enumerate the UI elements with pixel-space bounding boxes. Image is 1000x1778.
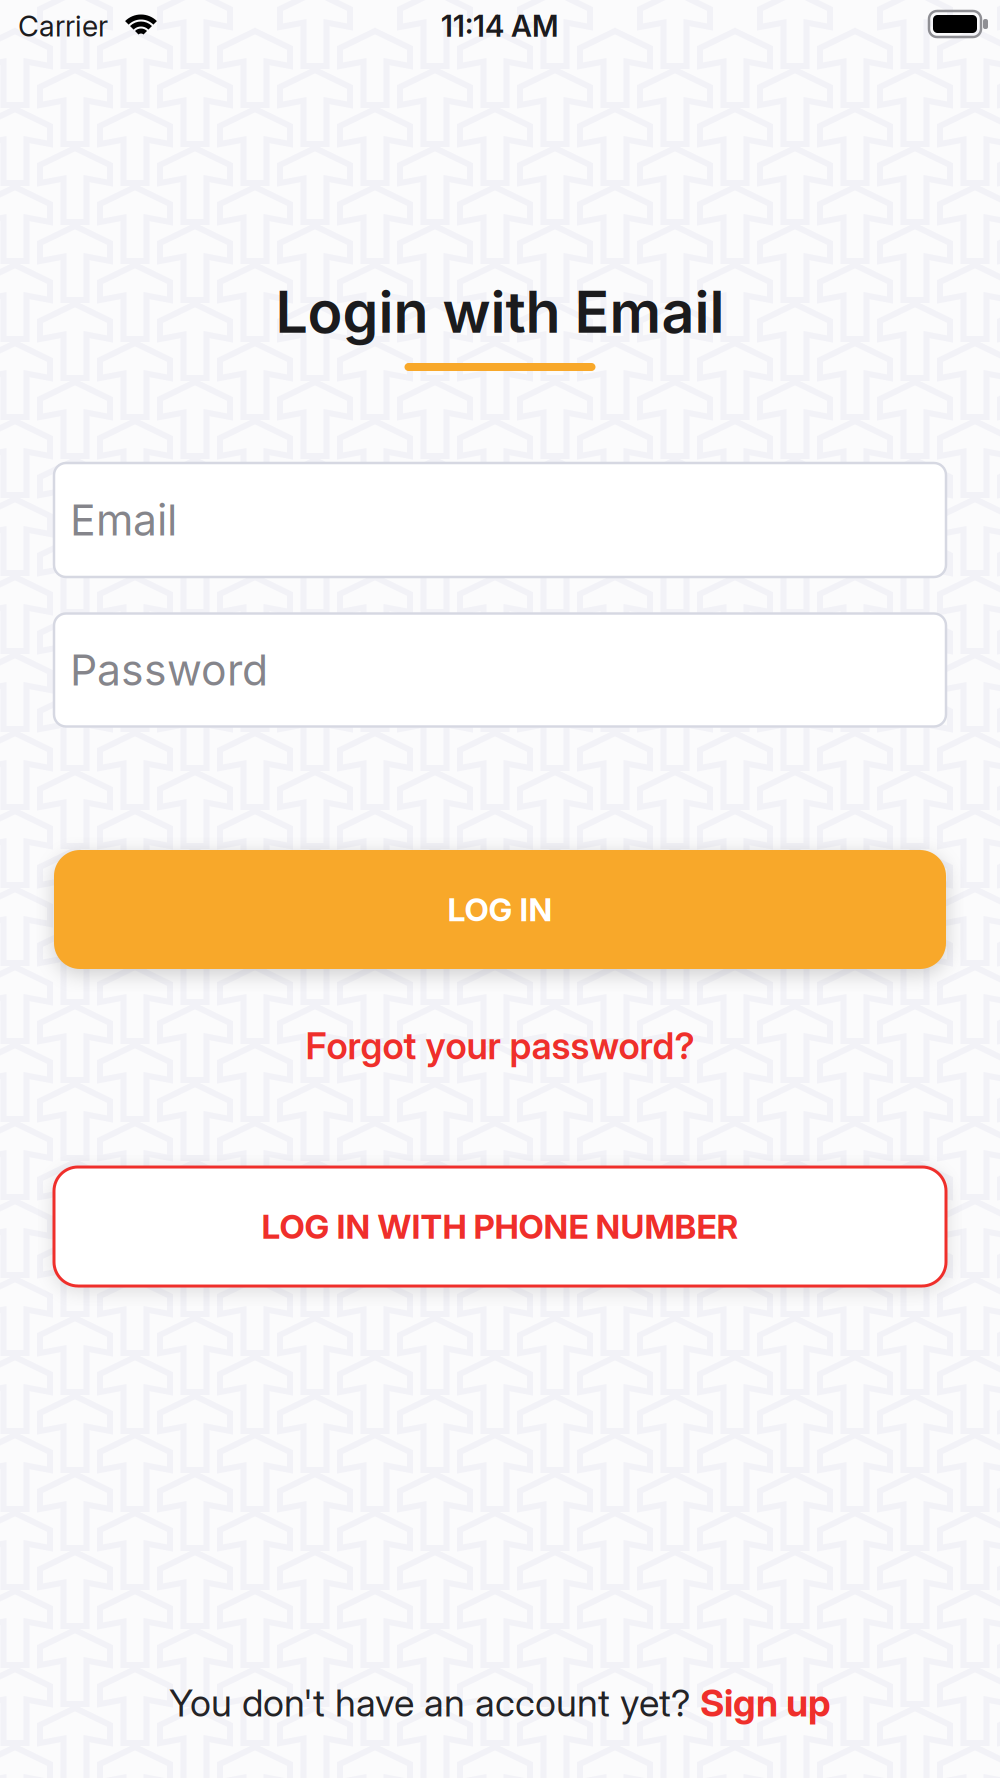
button[interactable]: Email — [54, 463, 946, 577]
staticText: Carrier — [18, 9, 108, 43]
staticText: Sign up — [700, 1680, 831, 1726]
button[interactable]: LOG IN WITH PHONE NUMBER — [54, 1167, 946, 1286]
button[interactable]: Password — [54, 613, 946, 726]
button[interactable]: Sign up — [700, 1680, 831, 1726]
staticText: Password — [70, 644, 268, 696]
button[interactable]: LOG IN — [54, 850, 946, 969]
staticText: LOG IN — [447, 890, 552, 929]
staticText: Email — [70, 494, 177, 546]
staticText: Login with Email — [275, 277, 724, 347]
staticText: You don't have an account yet? — [169, 1680, 700, 1726]
button[interactable]: Forgot your password? — [305, 1024, 694, 1068]
staticText: Forgot your password? — [305, 1024, 694, 1068]
staticText: LOG IN WITH PHONE NUMBER — [261, 1206, 738, 1247]
staticText: 11:14 AM — [441, 8, 559, 44]
